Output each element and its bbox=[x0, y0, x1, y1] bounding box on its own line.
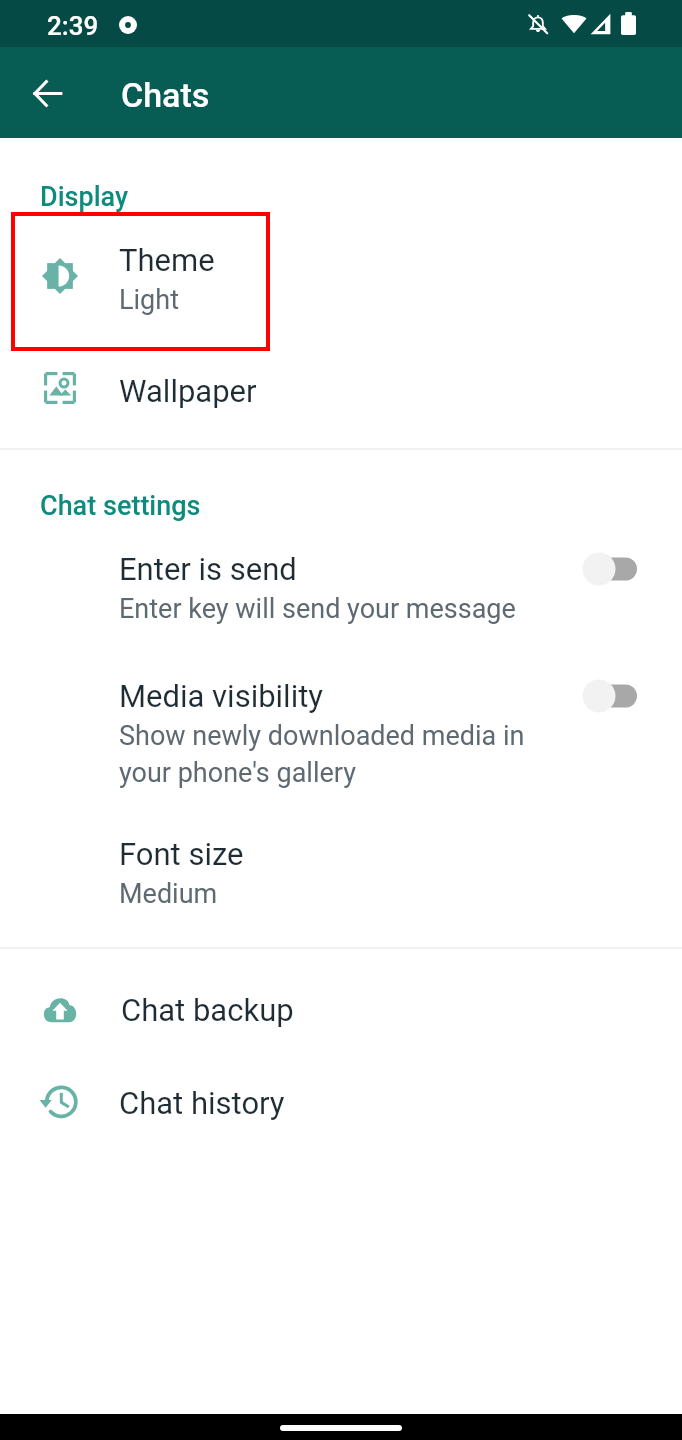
staticText: Chat settings bbox=[40, 490, 201, 522]
button[interactable]: Back bbox=[21, 67, 73, 119]
staticText: 2:39 bbox=[47, 11, 99, 41]
staticText: Chat backup bbox=[121, 992, 294, 1028]
staticText: Chats bbox=[121, 75, 210, 115]
button[interactable]: Enter is send toggle, off bbox=[570, 539, 650, 599]
button[interactable]: Media visibility toggle, off bbox=[570, 666, 650, 726]
button[interactable]: Wallpaper bbox=[0, 346, 682, 440]
staticText: Media visibility bbox=[119, 678, 323, 714]
staticText: Enter key will send your message bbox=[119, 593, 516, 625]
button[interactable]: Enter is send bbox=[0, 528, 682, 640]
button[interactable]: Font size bbox=[0, 813, 682, 925]
button[interactable]: Chat backup bbox=[0, 962, 682, 1056]
staticText: Show newly downloaded media in your phon… bbox=[119, 720, 525, 789]
staticText: Theme bbox=[119, 242, 215, 278]
staticText: Light bbox=[119, 284, 179, 316]
button[interactable]: Chat history bbox=[0, 1056, 682, 1150]
button[interactable]: Theme bbox=[0, 215, 682, 346]
staticText: Enter is send bbox=[119, 551, 297, 587]
staticText: Display bbox=[40, 181, 129, 213]
button[interactable]: Media visibility bbox=[0, 655, 682, 795]
staticText: Chat history bbox=[119, 1085, 285, 1121]
staticText: Wallpaper bbox=[119, 373, 257, 409]
staticText: Medium bbox=[119, 878, 218, 910]
staticText: Font size bbox=[119, 836, 244, 872]
